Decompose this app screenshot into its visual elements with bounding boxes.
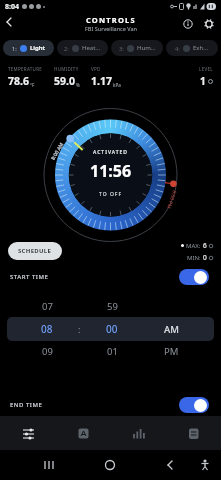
staticText: 1.17 [91, 74, 112, 88]
staticText: 8:04 [5, 2, 19, 12]
staticText: 08 [41, 322, 53, 336]
button[interactable] [111, 416, 166, 450]
button[interactable]: 3: [111, 40, 163, 56]
staticText: FBI Surveillance Van [85, 25, 137, 32]
staticText: 07 [42, 300, 53, 313]
staticText: kPa [113, 82, 121, 88]
button[interactable]: 4: [166, 40, 218, 56]
button[interactable] [166, 416, 221, 450]
button[interactable] [0, 13, 16, 34]
staticText: 4: [175, 45, 180, 52]
staticText: TO OFF [99, 191, 123, 198]
staticText: 59 [107, 300, 118, 313]
button[interactable] [179, 397, 209, 413]
button[interactable] [0, 416, 56, 450]
button[interactable]: 1: [3, 40, 54, 56]
staticText: 78.6 [8, 74, 29, 88]
staticText: 1 [200, 74, 206, 88]
staticText: : [78, 323, 81, 335]
staticText: CONTROLS [86, 15, 136, 25]
staticText: 09 [42, 345, 53, 358]
staticText: 6 [203, 241, 207, 250]
button[interactable]: SCHEDULE [8, 242, 62, 260]
staticText: 8:00 PM [165, 189, 178, 210]
staticText: 59.0 [54, 74, 75, 88]
staticText: MAX: [186, 242, 201, 250]
staticText: TEMPERATURE [8, 66, 43, 72]
staticText: HUMIDITY [54, 66, 79, 72]
staticText: 8:00 AM [50, 141, 65, 161]
staticText: 01 [107, 345, 118, 358]
button[interactable] [56, 416, 111, 450]
button[interactable] [183, 19, 193, 29]
button[interactable] [204, 19, 214, 29]
staticText: Heat... [82, 44, 101, 52]
staticText: 00 [106, 322, 118, 336]
staticText: END TIME [10, 401, 43, 409]
staticText: °F [30, 82, 35, 88]
staticText: VPD [91, 66, 101, 72]
staticText: LEVEL [199, 66, 213, 72]
staticText: 0 [203, 253, 207, 262]
staticText: Exh... [193, 44, 209, 52]
staticText: 11:56 [90, 160, 132, 182]
staticText: 2: [64, 45, 69, 52]
staticText: MIN: [187, 254, 201, 262]
staticText: AM [164, 323, 179, 336]
staticText: Light [30, 44, 45, 52]
staticText: PM [164, 345, 179, 358]
staticText: ACTIVATED [93, 149, 128, 156]
button[interactable] [7, 317, 214, 341]
staticText: % [76, 82, 80, 88]
staticText: 1: [12, 45, 17, 52]
button[interactable]: 2: [57, 40, 108, 56]
button[interactable] [179, 269, 209, 285]
staticText: 3: [119, 45, 124, 52]
staticText: Hum... [137, 44, 156, 52]
staticText: SCHEDULE [18, 247, 52, 255]
staticText: START TIME [10, 273, 49, 281]
